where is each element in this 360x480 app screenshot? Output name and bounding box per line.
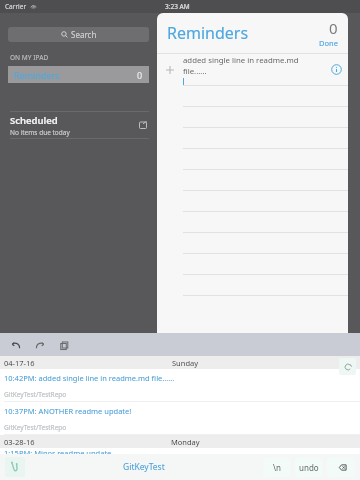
staticText: GitKeyTest/TestRepo [4, 423, 67, 432]
button[interactable]: Scheduled [0, 112, 157, 138]
button[interactable]: GitKey logo [5, 457, 25, 477]
staticText: GitKeyTest/TestRepo [4, 390, 67, 399]
staticText: 3:23 AM [165, 2, 190, 11]
staticText: Carrier [5, 2, 27, 11]
button[interactable]: Undo [6, 335, 26, 355]
staticText: 0 [137, 69, 143, 81]
staticText: 04-17-16 [4, 358, 35, 368]
button[interactable]: Refresh [339, 358, 356, 375]
staticText: Done [319, 38, 338, 48]
button[interactable]: 10:42PM: added single line in readme.md … [0, 369, 360, 387]
staticText: No items due today [10, 128, 70, 137]
button[interactable]: undo [295, 458, 323, 477]
staticText: Reminders [14, 69, 60, 81]
staticText: Scheduled [10, 114, 58, 127]
button[interactable]: 04-17-16 [0, 356, 360, 369]
staticText: Sunday [172, 358, 199, 368]
staticText: file...... [183, 66, 207, 77]
button[interactable]: Add reminder [157, 54, 348, 85]
button[interactable]: 1:15PM: Minor readme update [0, 448, 360, 454]
staticText: 03-28-16 [4, 437, 35, 447]
button[interactable]: 03-28-16 [0, 435, 360, 448]
staticText: Search [71, 29, 97, 40]
button[interactable]: Copy [54, 335, 74, 355]
button[interactable]: Redo [30, 335, 50, 355]
staticText: added single line in readme.md [183, 55, 299, 66]
staticText: GitKeyTest [123, 461, 165, 473]
staticText: ON MY IPAD [10, 53, 49, 62]
staticText: Monday [171, 437, 200, 447]
button[interactable]: Reminders [8, 66, 149, 83]
staticText: 10:37PM: ANOTHER readme update! [4, 406, 132, 416]
button[interactable]: \n [263, 458, 291, 477]
button[interactable]: 10:37PM: ANOTHER readme update! [0, 402, 360, 420]
button[interactable]: Add reminder [157, 54, 183, 85]
button[interactable]: Search [8, 27, 149, 42]
staticText: 0 [329, 18, 338, 38]
staticText: Reminders [167, 22, 249, 44]
button[interactable]: Reminder details [324, 54, 348, 85]
staticText: undo [299, 462, 319, 473]
staticText: 1:15PM: Minor readme update [4, 448, 112, 454]
button[interactable]: Backspace [327, 458, 355, 477]
staticText: \n [273, 462, 281, 473]
staticText: 10:42PM: added single line in readme.md … [4, 373, 175, 383]
